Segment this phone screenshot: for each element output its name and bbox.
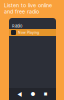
staticText: Radio (12, 24, 22, 28)
staticText: ■ (44, 92, 48, 96)
staticText: ◀ (17, 91, 22, 97)
staticText: Listen to live online (4, 2, 52, 8)
staticText: ● (30, 91, 35, 97)
staticText: and free radio (4, 8, 39, 15)
staticText: Now Playing (18, 30, 39, 34)
